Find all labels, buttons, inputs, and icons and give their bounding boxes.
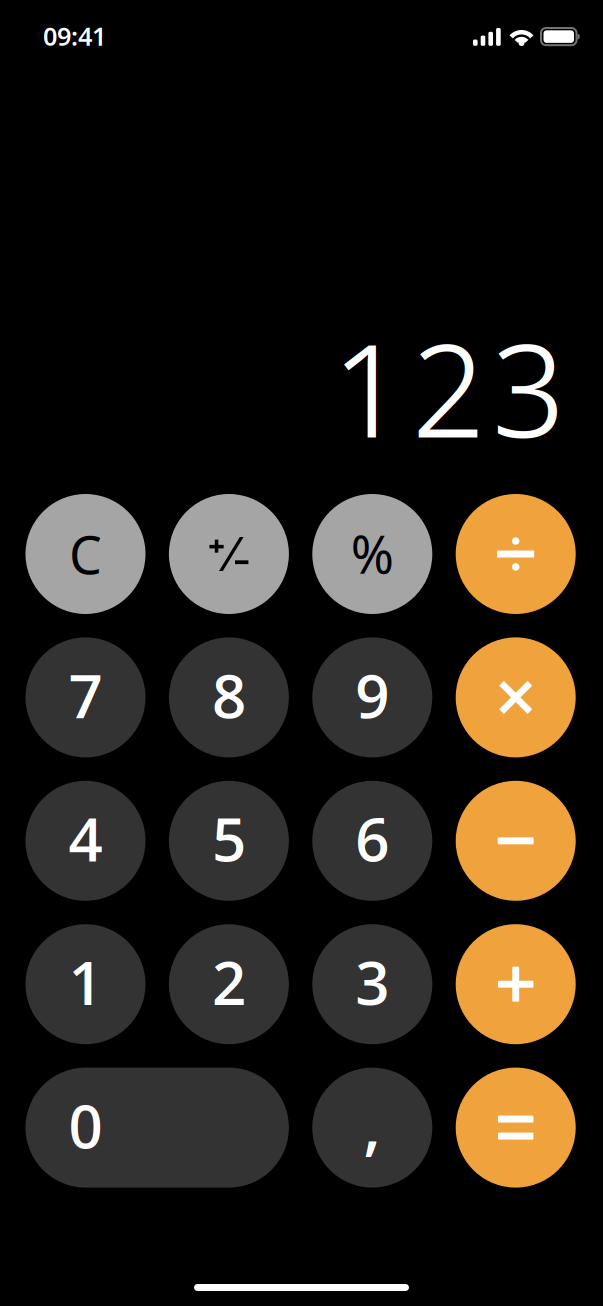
button[interactable]: 2 [169,924,289,1044]
staticText: 4 [68,797,102,879]
button[interactable]: 0 [25,1068,289,1188]
button[interactable]: C [25,494,145,614]
button[interactable]: Plus minus [169,494,289,614]
staticText: % [351,518,394,589]
button[interactable]: Multiply [456,637,576,757]
button[interactable]: , [312,1068,432,1188]
button[interactable]: 9 [312,637,432,757]
button[interactable]: Add [456,924,576,1044]
staticText: C [69,519,102,589]
button[interactable]: 3 [312,924,432,1044]
staticText: 1 [68,941,102,1022]
button[interactable]: Equals [456,1068,576,1188]
staticText: 3 [355,941,389,1022]
staticText: 5 [212,797,246,879]
button[interactable]: Subtract [456,781,576,901]
button[interactable]: 7 [25,637,145,757]
staticText: 8 [212,654,246,736]
staticText: 0 [68,1084,102,1166]
staticText: 6 [355,797,389,879]
staticText: 9 [355,654,389,736]
staticText: 123 [332,301,565,475]
button[interactable]: 1 [25,924,145,1044]
button[interactable]: 5 [169,781,289,901]
button[interactable]: Divide [456,494,576,614]
staticText: , [363,1080,381,1168]
button[interactable]: 8 [169,637,289,757]
button[interactable]: 6 [312,781,432,901]
button[interactable]: 4 [25,781,145,901]
staticText: 09:41 [43,19,106,53]
button[interactable]: % [312,494,432,614]
staticText: 7 [68,654,102,736]
staticText: 2 [212,941,246,1022]
